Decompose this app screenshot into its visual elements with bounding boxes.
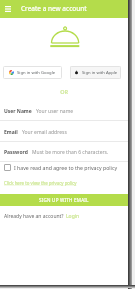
staticText: Must be more than 6 characters. [32, 149, 109, 156]
staticText: Password [4, 149, 28, 156]
staticText: Email [4, 129, 18, 136]
staticText: Already have an account? [4, 213, 64, 220]
staticText: Your email address [22, 129, 67, 136]
staticText: OR [0, 88, 128, 95]
button[interactable]: Open navigation menu [2, 3, 13, 14]
staticText: Sign in with Apple [82, 70, 118, 76]
button[interactable]: SIGN UP WITH EMAIL [0, 194, 128, 206]
button[interactable]: Login [66, 213, 80, 220]
staticText: SIGN UP WITH EMAIL [39, 197, 89, 203]
button[interactable]: Sign in with Apple [70, 66, 121, 79]
button[interactable]: I have read and agree to the privacy pol… [0, 161, 128, 174]
button[interactable]: Sign in with Google [3, 66, 62, 79]
button[interactable]: Click here to view the privacy policy [4, 180, 77, 186]
staticText: Create a new account [21, 4, 87, 13]
staticText: Sign in with Google [17, 70, 56, 76]
staticText: I have read and agree to the privacy pol… [14, 164, 118, 171]
staticText: Your user name [36, 108, 74, 115]
staticText: User Name [4, 108, 32, 115]
